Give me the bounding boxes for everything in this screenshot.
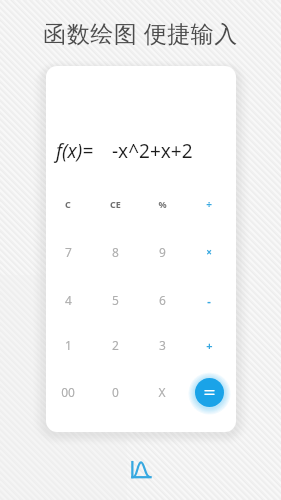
staticText: % bbox=[158, 198, 167, 210]
button[interactable]: 2 bbox=[95, 325, 135, 365]
button[interactable]: CE bbox=[95, 184, 135, 224]
staticText: 4 bbox=[65, 292, 72, 308]
staticText: 00 bbox=[61, 384, 75, 400]
staticText: 0 bbox=[112, 384, 119, 400]
other: Function graph logo bbox=[128, 457, 154, 483]
button[interactable]: 00 bbox=[48, 372, 88, 412]
button[interactable]: × bbox=[189, 232, 229, 272]
staticText: 7 bbox=[65, 244, 72, 260]
button[interactable]: - bbox=[189, 280, 229, 320]
staticText: 1 bbox=[65, 337, 72, 353]
staticText: 8 bbox=[112, 244, 119, 260]
button[interactable]: 4 bbox=[48, 280, 88, 320]
button[interactable]: 3 bbox=[142, 325, 182, 365]
button[interactable]: Equals bbox=[195, 378, 224, 407]
staticText: + bbox=[206, 338, 213, 353]
staticText: CE bbox=[110, 198, 121, 210]
button[interactable]: 1 bbox=[48, 325, 88, 365]
staticText: f(x)= bbox=[56, 138, 94, 164]
button[interactable]: + bbox=[189, 325, 229, 365]
staticText: 9 bbox=[159, 244, 166, 260]
button[interactable]: 6 bbox=[142, 280, 182, 320]
staticText: 3 bbox=[159, 337, 166, 353]
button[interactable]: 7 bbox=[48, 232, 88, 272]
button[interactable]: 8 bbox=[95, 232, 135, 272]
staticText: 函数绘图 便捷输入 bbox=[43, 17, 238, 48]
staticText: - bbox=[207, 293, 211, 308]
staticText: C bbox=[65, 198, 71, 210]
staticText: -x^2+x+2 bbox=[112, 138, 193, 164]
button[interactable]: 5 bbox=[95, 280, 135, 320]
staticText: 2 bbox=[112, 337, 119, 353]
button[interactable]: C bbox=[48, 184, 88, 224]
button[interactable]: % bbox=[142, 184, 182, 224]
staticText: X bbox=[158, 384, 166, 400]
button[interactable]: X bbox=[142, 372, 182, 412]
button[interactable]: 9 bbox=[142, 232, 182, 272]
staticText: ÷ bbox=[206, 197, 212, 211]
staticText: × bbox=[206, 245, 212, 259]
staticText: 5 bbox=[112, 292, 119, 308]
staticText: 6 bbox=[159, 292, 166, 308]
button[interactable]: f(x)= bbox=[56, 136, 226, 166]
button[interactable]: ÷ bbox=[189, 184, 229, 224]
button[interactable]: 0 bbox=[95, 372, 135, 412]
